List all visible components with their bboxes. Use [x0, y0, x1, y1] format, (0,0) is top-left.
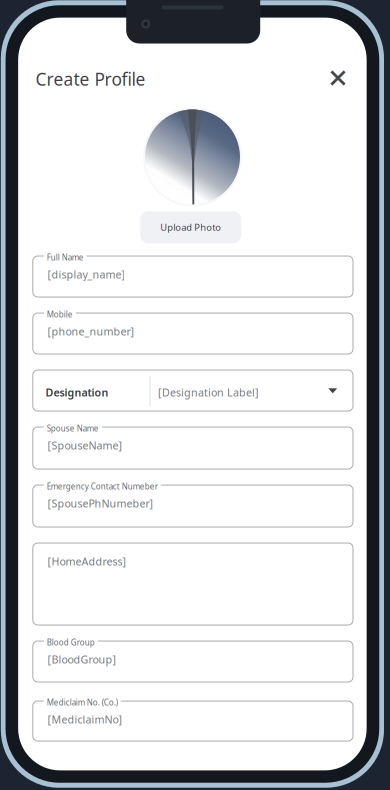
staticText: Mobile: [47, 309, 73, 320]
button[interactable]: [SpousePhNumeber]: [33, 485, 353, 527]
staticText: Emergency Contact Numeber: [47, 481, 158, 492]
staticText: Create Profile: [35, 67, 145, 90]
button[interactable]: Close: [323, 63, 353, 93]
button[interactable]: Upload Photo: [140, 211, 241, 243]
staticText: [phone_number]: [47, 324, 134, 338]
staticText: Blood Group: [47, 637, 95, 648]
staticText: [Designation Label]: [158, 385, 259, 399]
staticText: Spouse Name: [47, 423, 99, 434]
button[interactable]: [phone_number]: [33, 313, 353, 354]
button[interactable]: [BloodGroup]: [33, 641, 353, 682]
staticText: Full Name: [47, 252, 84, 263]
staticText: Mediclaim No. (Co.): [47, 697, 118, 708]
staticText: [display_name]: [47, 267, 125, 281]
staticText: Upload Photo: [160, 221, 221, 233]
staticText: [MediclaimNo]: [47, 712, 122, 726]
button[interactable]: Create Profile: [33, 63, 147, 94]
button[interactable]: [MediclaimNo]: [33, 701, 353, 741]
staticText: [SpousePhNumeber]: [47, 496, 153, 510]
button[interactable]: Designation: [33, 370, 353, 411]
staticText: [BloodGroup]: [47, 652, 116, 666]
button[interactable]: [SpouseName]: [33, 427, 353, 469]
button[interactable]: [HomeAddress]: [33, 543, 353, 625]
staticText: [HomeAddress]: [47, 554, 126, 568]
staticText: Designation: [45, 385, 108, 399]
staticText: [SpouseName]: [47, 438, 122, 452]
button[interactable]: [display_name]: [33, 256, 353, 297]
